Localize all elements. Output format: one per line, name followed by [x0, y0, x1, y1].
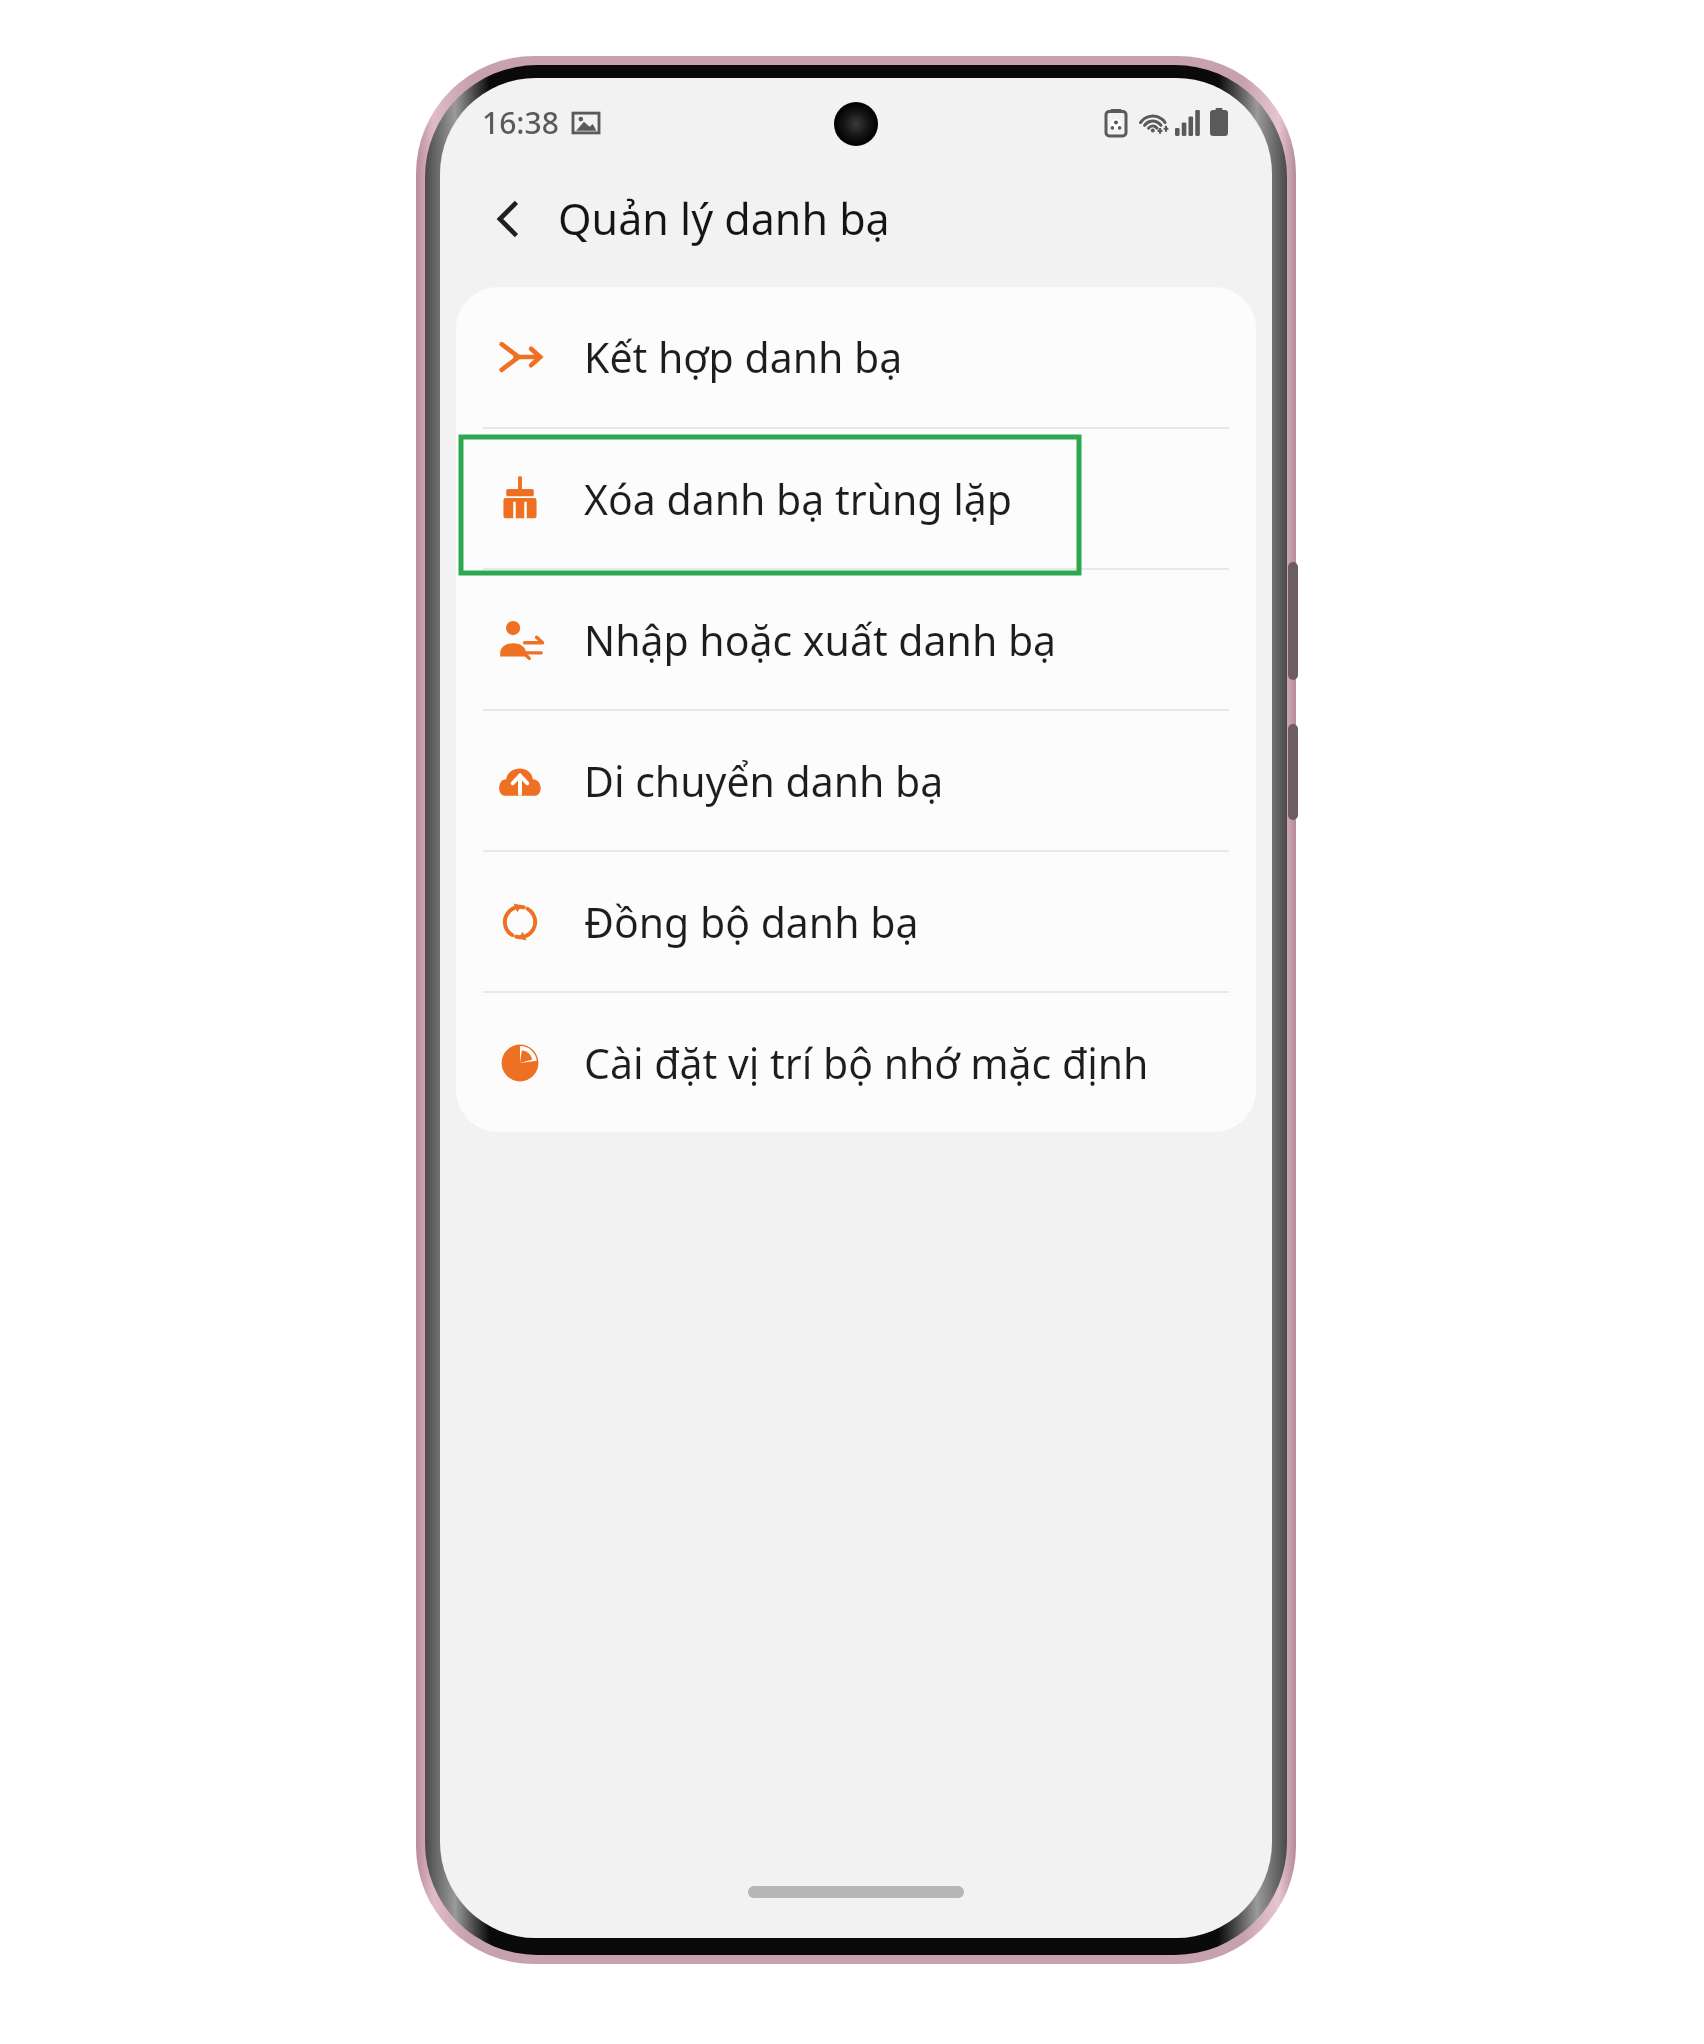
staticText: Quản lý danh bạ	[558, 189, 890, 248]
staticText: Cài đặt vị trí bộ nhớ mặc định	[584, 1035, 1149, 1091]
staticText: Nhập hoặc xuất danh bạ	[584, 612, 1057, 668]
staticText: 16:38	[482, 102, 559, 143]
staticText: Kết hợp danh bạ	[584, 329, 903, 385]
button[interactable]: Nhập hoặc xuất danh bạ	[456, 570, 1256, 709]
button[interactable]: Back	[470, 181, 546, 257]
button[interactable]: Đồng bộ danh bạ	[456, 852, 1256, 991]
button[interactable]: Di chuyển danh bạ	[456, 711, 1256, 850]
staticText: Xóa danh bạ trùng lặp	[584, 471, 1012, 527]
button[interactable]: Kết hợp danh bạ	[456, 287, 1256, 427]
staticText: Đồng bộ danh bạ	[584, 894, 919, 950]
button[interactable]: Xóa danh bạ trùng lặp	[456, 429, 1256, 568]
button[interactable]: Cài đặt vị trí bộ nhớ mặc định	[456, 993, 1256, 1132]
staticText: Di chuyển danh bạ	[584, 753, 944, 809]
